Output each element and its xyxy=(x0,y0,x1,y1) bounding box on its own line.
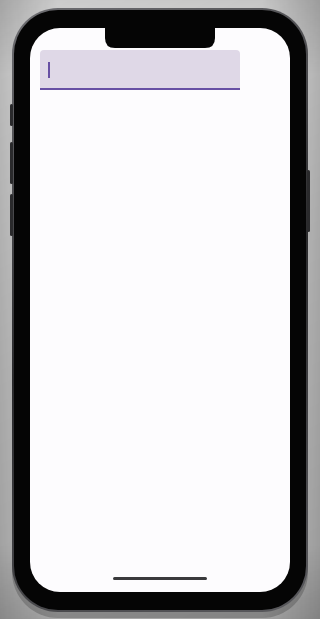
button[interactable]: Volume up xyxy=(10,142,13,184)
other: Home indicator xyxy=(113,577,207,580)
button[interactable]: Power xyxy=(307,170,310,232)
button[interactable] xyxy=(40,50,240,90)
button[interactable]: Ring/Silent switch xyxy=(10,104,13,126)
button[interactable]: Volume down xyxy=(10,194,13,236)
